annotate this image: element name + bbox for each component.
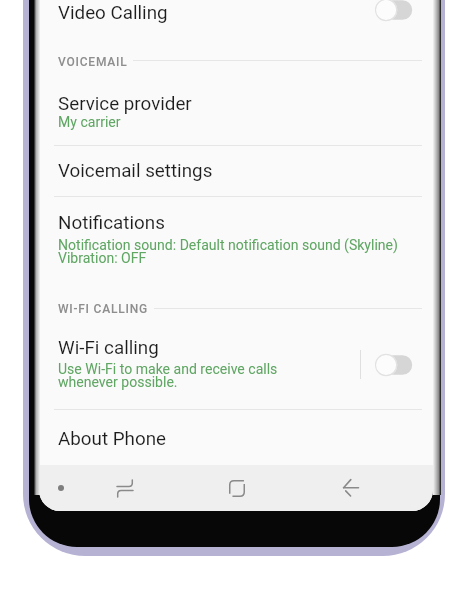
button[interactable] <box>39 320 433 408</box>
staticText: About Phone <box>58 428 166 450</box>
staticText: Use Wi-Fi to make and receive calls when… <box>58 361 278 391</box>
staticText: Notifications <box>58 212 165 234</box>
staticText: Wi-Fi calling <box>58 337 159 359</box>
staticText: Service provider <box>58 93 192 115</box>
staticText: WI-FI CALLING <box>58 302 148 316</box>
button[interactable]: Video Calling switch, off <box>367 0 420 29</box>
button[interactable]: Back <box>331 468 371 508</box>
staticText: Voicemail settings <box>58 160 213 182</box>
staticText: VOICEMAIL <box>58 55 128 69</box>
button[interactable] <box>39 0 433 34</box>
button[interactable] <box>39 70 433 145</box>
button[interactable]: Home <box>217 468 257 508</box>
staticText: My carrier <box>58 114 121 130</box>
button[interactable]: Recent apps <box>105 468 145 508</box>
button[interactable]: Wi-Fi calling switch, off <box>367 346 420 384</box>
button[interactable] <box>39 409 433 465</box>
staticText: Video Calling <box>58 2 168 24</box>
button[interactable] <box>39 146 433 196</box>
button[interactable] <box>39 197 433 275</box>
staticText: Notification sound: Default notification… <box>58 237 398 267</box>
button[interactable]: Menu <box>41 468 81 508</box>
